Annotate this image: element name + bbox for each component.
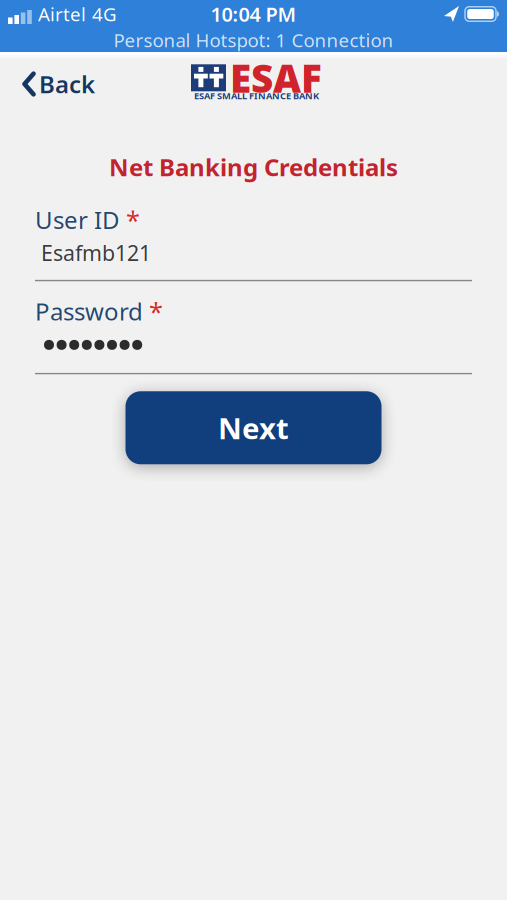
staticText: User ID [35, 204, 120, 236]
staticText: * [149, 294, 163, 328]
staticText: Esafmb121 [41, 238, 151, 267]
staticText: ESAF SMALL FINANCE BANK [194, 89, 319, 102]
button[interactable]: User ID [35, 203, 472, 281]
button[interactable]: Back [0, 60, 95, 108]
staticText: Back [39, 68, 95, 100]
button[interactable]: Next [125, 391, 381, 464]
staticText: 10:04 PM [210, 1, 296, 27]
staticText: 4G [92, 2, 117, 26]
staticText: Next [218, 408, 289, 447]
staticText: Airtel [38, 2, 86, 26]
staticText: Password [35, 295, 143, 327]
button[interactable]: Password [35, 281, 472, 374]
staticText: Personal Hotspot: 1 Connection [113, 28, 393, 52]
staticText: * [126, 203, 140, 236]
staticText: Net Banking Credentials [109, 151, 398, 183]
staticText: ESAF [230, 52, 322, 103]
